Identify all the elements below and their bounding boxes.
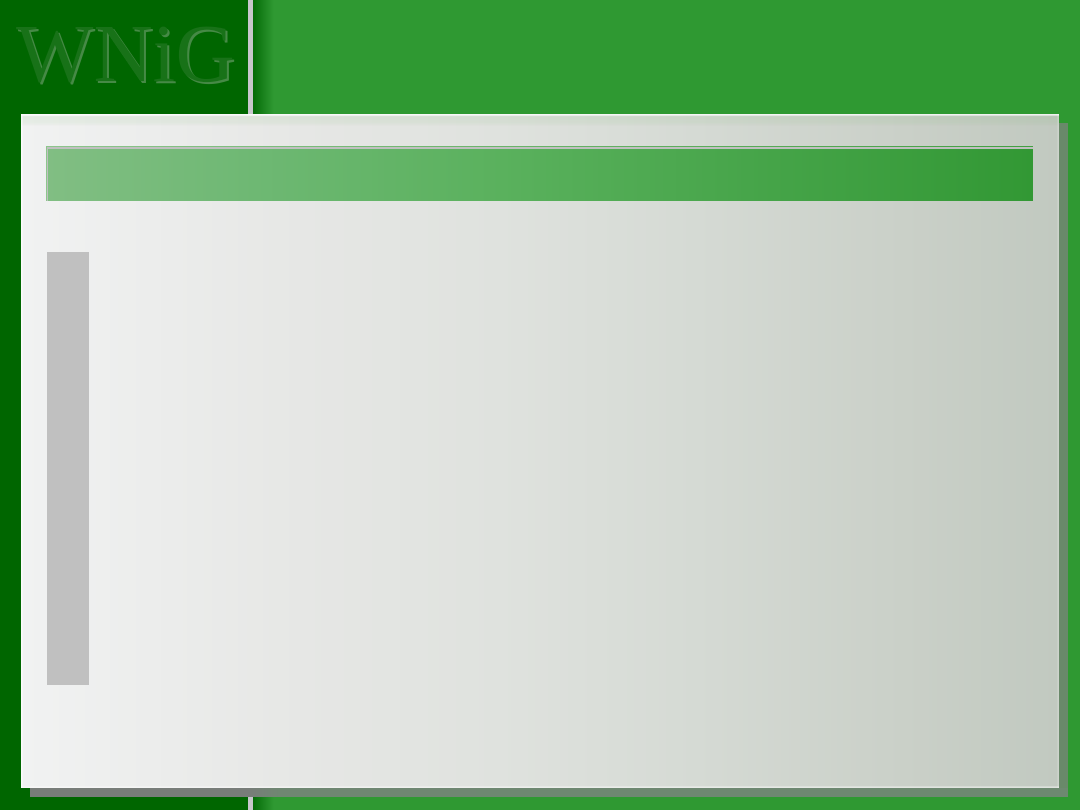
button[interactable] [46,146,1033,201]
staticText: WNiG [16,8,235,99]
staticText: WNiG [18,10,237,101]
